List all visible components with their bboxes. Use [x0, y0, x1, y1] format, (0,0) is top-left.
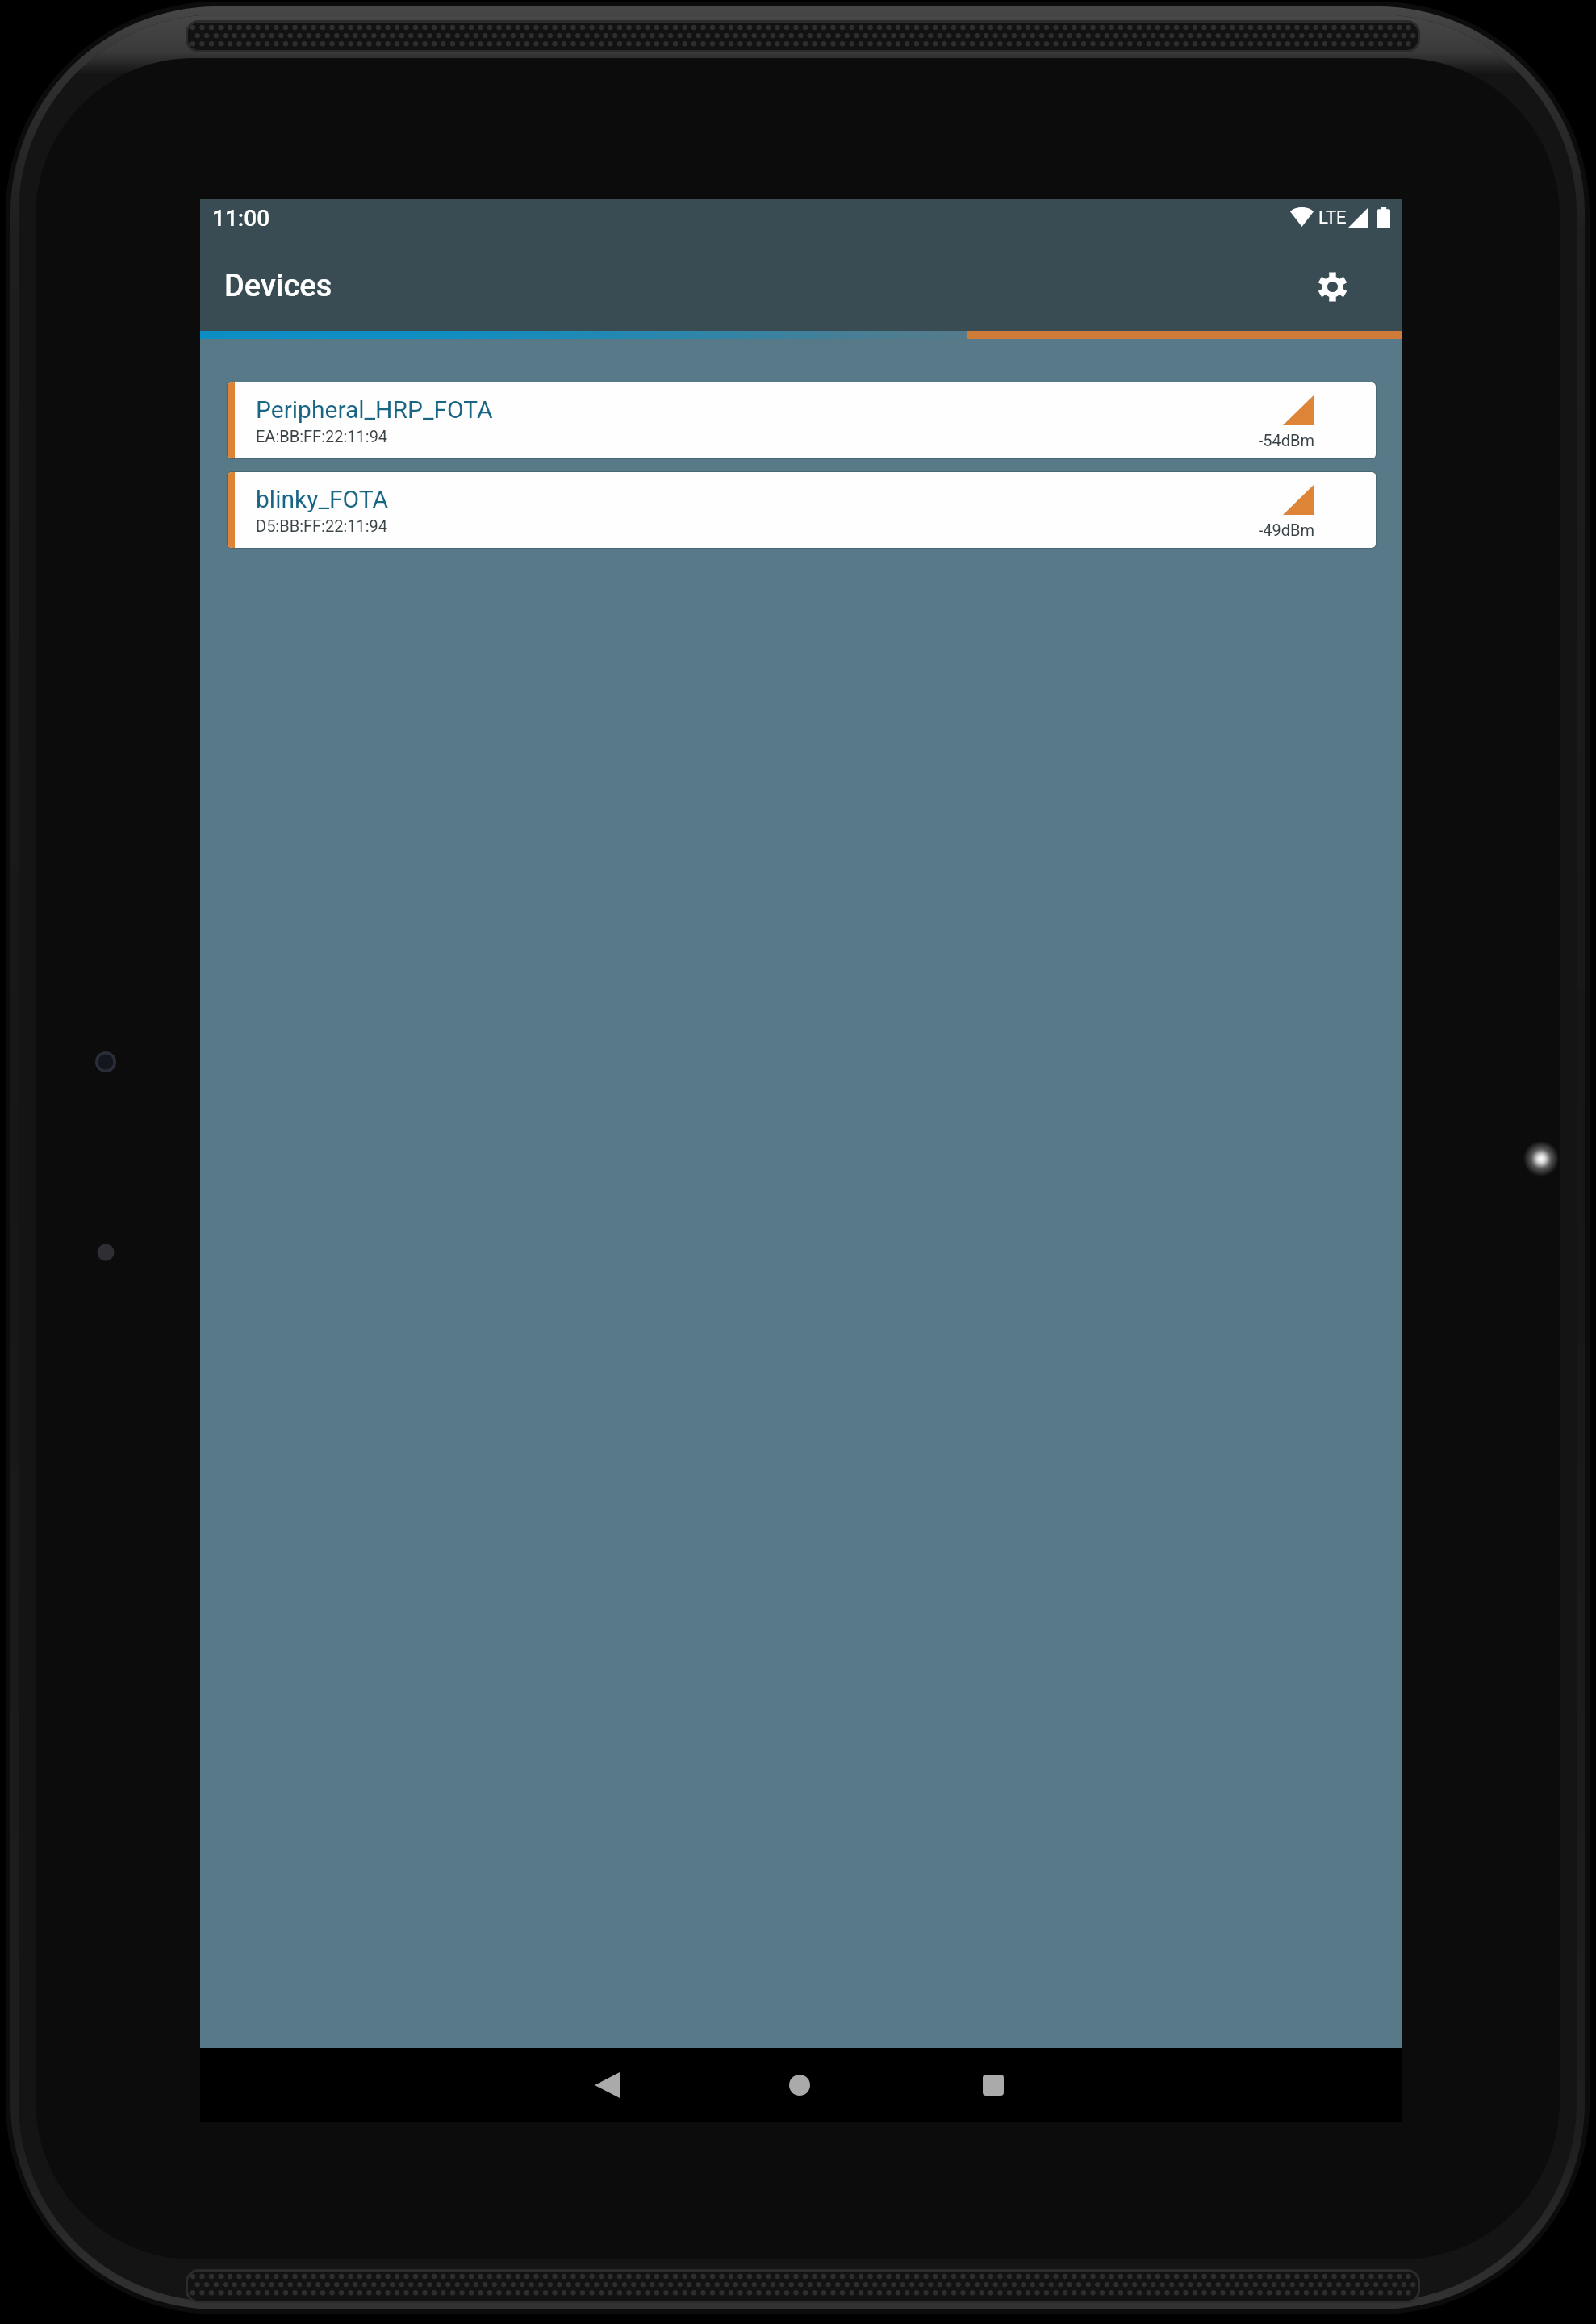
- staticText: LTE: [1318, 207, 1347, 228]
- button[interactable]: Settings: [1302, 257, 1362, 316]
- staticText: D5:BB:FF:22:11:94: [256, 516, 388, 535]
- staticText: EA:BB:FF:22:11:94: [256, 427, 388, 445]
- button[interactable]: Recents: [955, 2048, 1032, 2122]
- button[interactable]: Back: [568, 2048, 646, 2122]
- button[interactable]: blinky_FOTA: [228, 472, 1376, 548]
- button[interactable]: Home: [761, 2048, 838, 2122]
- staticText: -54dBm: [1258, 431, 1314, 449]
- staticText: blinky_FOTA: [256, 485, 389, 513]
- button[interactable]: Peripheral_HRP_FOTA: [228, 382, 1376, 458]
- staticText: Devices: [224, 268, 332, 304]
- staticText: 11:00: [212, 205, 270, 232]
- staticText: -49dBm: [1258, 520, 1314, 539]
- staticText: Peripheral_HRP_FOTA: [256, 395, 493, 424]
